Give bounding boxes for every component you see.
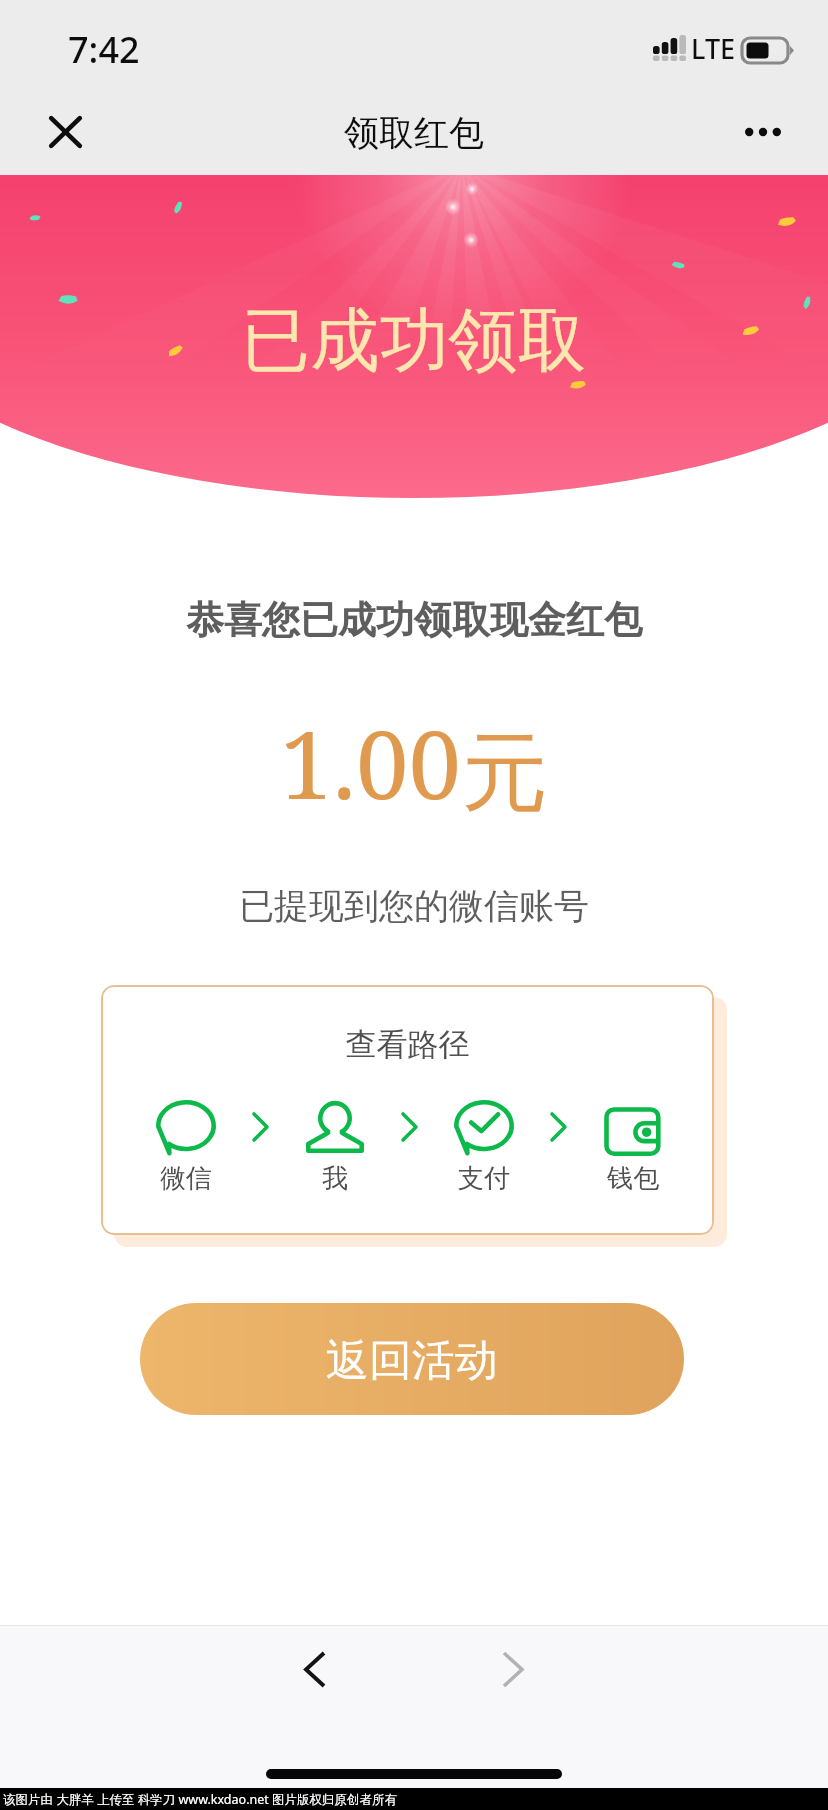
staticText: 元 bbox=[462, 719, 548, 827]
button[interactable]: 支付 bbox=[439, 1100, 529, 1195]
button[interactable]: Forward bbox=[472, 1628, 554, 1710]
staticText: 钱包 bbox=[607, 1162, 659, 1195]
staticText: 恭喜您已成功领取现金红包 bbox=[0, 596, 828, 644]
staticText: 我 bbox=[322, 1162, 348, 1195]
button[interactable]: Back bbox=[274, 1628, 356, 1710]
button[interactable]: 微信 bbox=[141, 1100, 231, 1195]
staticText: LTE bbox=[691, 30, 736, 67]
staticText: 该图片由 大胖羊 上传至 科学刀 www.kxdao.net 图片版权归原创者所… bbox=[3, 1791, 398, 1808]
staticText: 已成功领取 bbox=[0, 298, 828, 385]
button[interactable]: More options bbox=[726, 95, 800, 169]
button[interactable]: Close bbox=[28, 95, 102, 169]
button[interactable]: 钱包 bbox=[588, 1100, 678, 1195]
staticText: 1.00 bbox=[280, 699, 462, 827]
staticText: 返回活动 bbox=[326, 1334, 498, 1388]
staticText: 已提现到您的微信账号 bbox=[0, 884, 828, 928]
staticText: 查看路径 bbox=[101, 1025, 714, 1064]
staticText: 7:42 bbox=[68, 25, 140, 74]
staticText: 支付 bbox=[458, 1162, 510, 1195]
staticText: 微信 bbox=[160, 1162, 212, 1195]
button[interactable]: 返回活动 bbox=[140, 1303, 684, 1415]
staticText: 领取红包 bbox=[0, 111, 828, 155]
button[interactable]: 我 bbox=[290, 1100, 380, 1195]
